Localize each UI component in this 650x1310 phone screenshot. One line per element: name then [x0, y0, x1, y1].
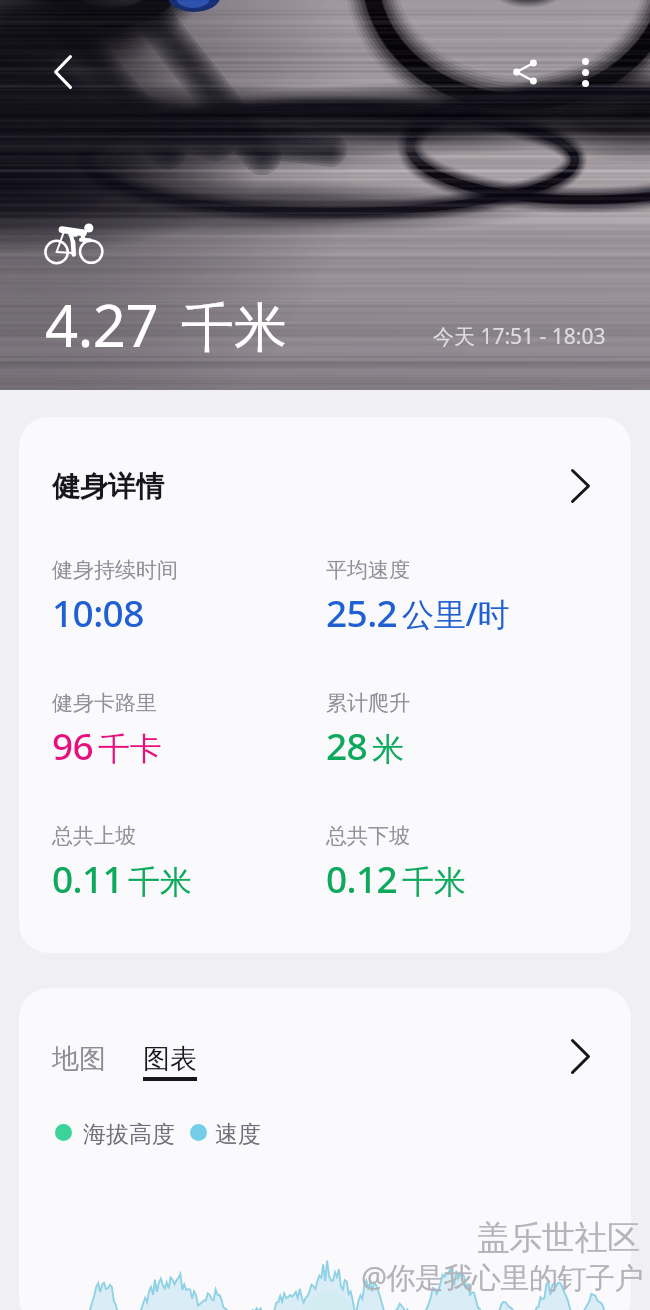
staticText: 25.2 [326, 587, 398, 637]
button[interactable]: Back [35, 44, 91, 100]
button[interactable]: 地图 [46, 1036, 110, 1080]
staticText: 0.11 [52, 853, 124, 903]
staticText: 28 [326, 720, 368, 770]
staticText: 千卡 [98, 729, 162, 769]
staticText: 海拔高度 [83, 1120, 175, 1149]
button[interactable]: 图表 [130, 1036, 208, 1088]
staticText: 4.27 [45, 285, 159, 364]
staticText: 平均速度 [326, 557, 410, 583]
staticText: 健身卡路里 [52, 690, 157, 716]
staticText: 公里/时 [402, 592, 510, 636]
staticText: 盖乐世社区 [477, 1217, 640, 1259]
staticText: 健身详情 [52, 469, 164, 504]
staticText: 10:08 [52, 587, 144, 637]
staticText: @你是我心里的钉子户 [361, 1257, 644, 1297]
button[interactable]: Share [497, 44, 553, 100]
staticText: 图表 [143, 1042, 197, 1076]
staticText: 96 [52, 720, 94, 770]
staticText: 累计爬升 [326, 690, 410, 716]
staticText: 千米 [128, 862, 192, 902]
button[interactable]: 健身详情 [19, 417, 631, 953]
staticText: 米 [372, 729, 404, 769]
staticText: 0.12 [326, 853, 398, 903]
staticText: 千米 [181, 295, 287, 362]
staticText: 千米 [402, 862, 466, 902]
staticText: 今天 17:51 - 18:03 [433, 322, 606, 351]
staticText: 总共上坡 [52, 823, 136, 849]
staticText: 健身持续时间 [52, 557, 178, 583]
staticText: 速度 [215, 1120, 261, 1149]
staticText: 地图 [52, 1042, 106, 1076]
staticText: 总共下坡 [326, 823, 410, 849]
button[interactable]: More options [557, 44, 613, 100]
